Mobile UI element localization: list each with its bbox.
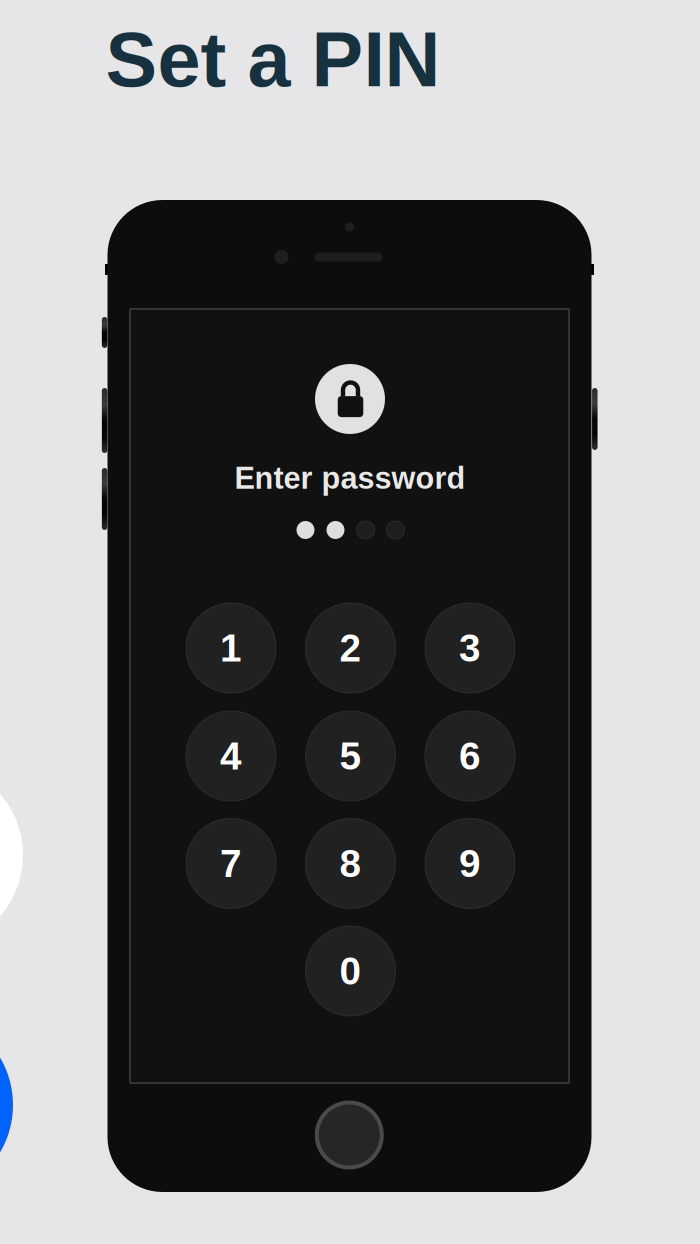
staticText: 8 [339, 842, 361, 885]
button[interactable]: 7 [186, 818, 276, 908]
button[interactable]: 4 [186, 711, 276, 801]
staticText: 6 [459, 734, 481, 778]
staticText: 2 [339, 626, 361, 670]
staticText: 0 [339, 949, 361, 993]
staticText: 3 [459, 626, 481, 670]
staticText: 9 [459, 842, 481, 885]
button[interactable]: 5 [305, 711, 395, 801]
button[interactable]: 8 [305, 818, 395, 908]
button[interactable]: 0 [305, 926, 395, 1016]
button[interactable]: 9 [425, 818, 515, 908]
staticText: 1 [220, 626, 242, 670]
staticText: Set a PIN [105, 16, 440, 103]
button[interactable]: 2 [305, 603, 395, 693]
button[interactable]: 3 [425, 603, 515, 693]
staticText: Enter password [234, 461, 465, 495]
staticText: 7 [220, 842, 242, 885]
button[interactable]: 6 [425, 711, 515, 801]
button[interactable]: 1 [186, 603, 276, 693]
staticText: 4 [220, 734, 242, 778]
staticText: 5 [339, 734, 361, 778]
